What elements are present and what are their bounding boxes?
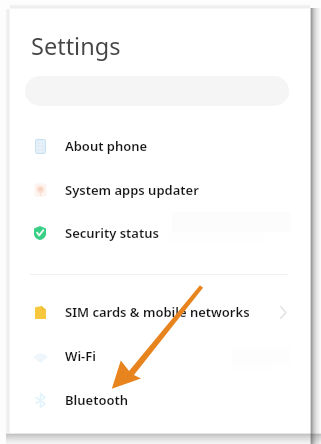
staticText: Bluetooth xyxy=(65,391,129,409)
staticText: Settings xyxy=(31,30,121,62)
button[interactable]: Wi-Fi xyxy=(10,334,310,378)
button[interactable]: System apps updater xyxy=(10,168,310,212)
button[interactable]: Security status xyxy=(10,211,310,255)
staticText: SIM cards & mobile networks xyxy=(65,303,250,321)
button[interactable]: Bluetooth xyxy=(10,378,310,422)
button[interactable]: SIM cards & mobile networks xyxy=(10,290,310,334)
staticText: Security status xyxy=(65,224,159,242)
staticText: About phone xyxy=(65,137,148,155)
staticText: Wi-Fi xyxy=(65,347,96,365)
staticText: System apps updater xyxy=(65,181,199,199)
button[interactable]: About phone xyxy=(10,124,310,168)
